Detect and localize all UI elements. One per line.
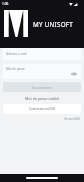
staticText: 1:06 — [2, 2, 9, 6]
button[interactable]: Adresse e-mail — [3, 48, 81, 60]
staticText: Se connecter — [32, 85, 53, 89]
button[interactable]: Connexion via SSO — [3, 104, 81, 114]
button[interactable]: Se connecter — [3, 82, 81, 92]
staticText: Mot de passe oublié — [25, 96, 59, 101]
button[interactable]: Mot de passe oublié — [3, 94, 81, 102]
staticText: Adresse e-mail — [6, 52, 27, 56]
staticText: MY UNISOFT — [33, 20, 74, 29]
button[interactable]: Mot de passe — [3, 64, 81, 79]
staticText: Connexion via SSO — [29, 107, 56, 111]
staticText: Mot de passe — [6, 67, 25, 71]
staticText: Version 4.8.0 — [3, 117, 80, 121]
button[interactable]: Afficher le mot de passe — [70, 70, 78, 78]
